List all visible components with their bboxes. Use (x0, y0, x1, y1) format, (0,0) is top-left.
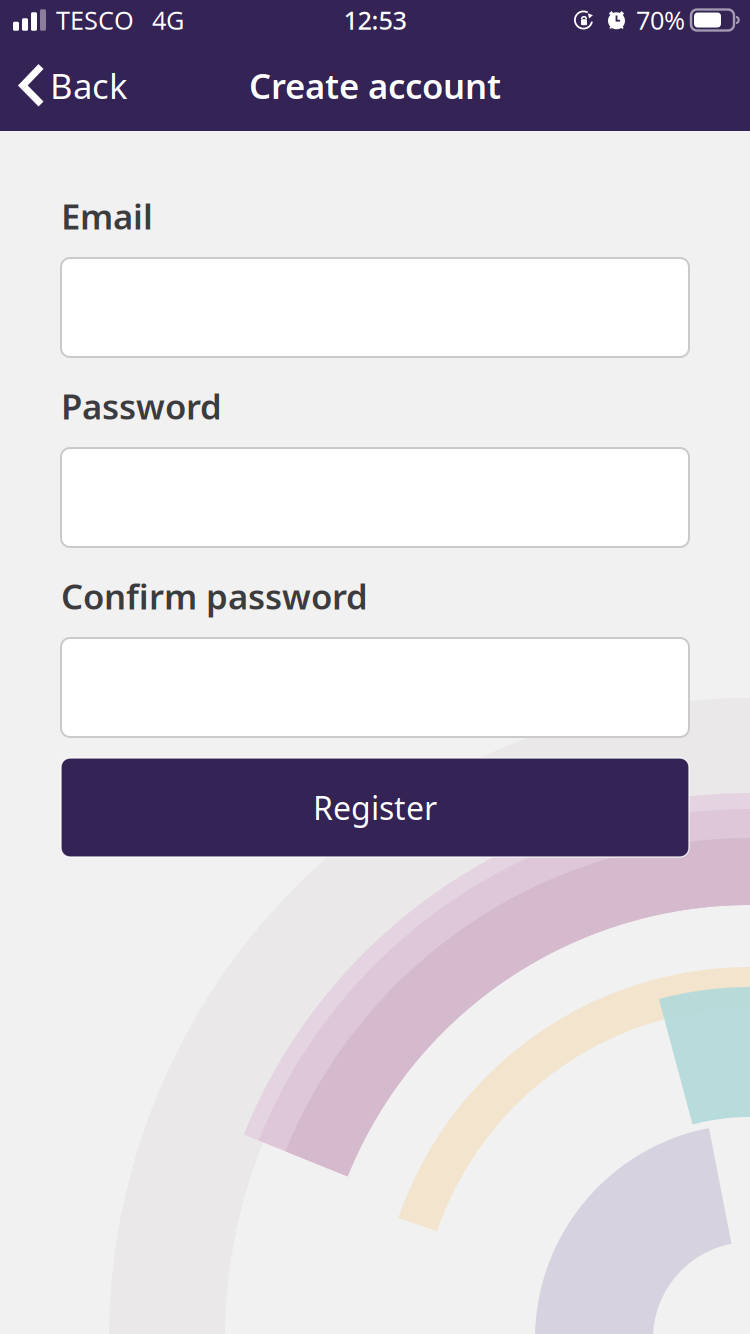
staticText: Register (313, 786, 437, 829)
staticText: 4G (152, 3, 184, 37)
staticText: 70% (636, 3, 685, 37)
button[interactable]: Text field (61, 448, 689, 547)
staticText: Create account (249, 62, 501, 108)
staticText: Email (61, 193, 153, 239)
button[interactable]: Text field (61, 638, 689, 737)
staticText: Password (61, 383, 222, 429)
button[interactable]: Back (0, 48, 144, 122)
staticText: Back (50, 62, 128, 108)
button[interactable]: Register (61, 758, 689, 857)
staticText: TESCO (56, 3, 134, 37)
staticText: 12:53 (343, 3, 406, 37)
button[interactable]: Text field (61, 258, 689, 357)
staticText: Confirm password (61, 573, 368, 619)
